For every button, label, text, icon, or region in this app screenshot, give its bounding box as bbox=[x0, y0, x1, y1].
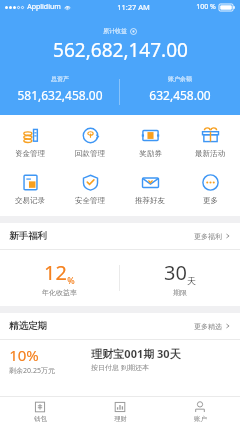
staticText: 581,632,458.00 bbox=[17, 87, 103, 103]
staticText: 交易记录 bbox=[15, 196, 45, 205]
staticText: 12 bbox=[44, 259, 67, 286]
staticText: 更多精选 bbox=[194, 322, 222, 331]
staticText: 精选定期 bbox=[9, 320, 47, 332]
staticText: 理财宝001期 30天 bbox=[91, 346, 181, 361]
staticText: 奖励券 bbox=[139, 149, 162, 158]
staticText: 最新活动 bbox=[195, 149, 225, 158]
staticText: 30 bbox=[164, 259, 187, 286]
staticText: 安全管理 bbox=[75, 196, 105, 205]
button[interactable]: 账户 bbox=[160, 397, 240, 427]
staticText: 账户余额 bbox=[168, 75, 192, 83]
staticText: 理财 bbox=[114, 415, 127, 423]
staticText: 剩余20.25万元 bbox=[9, 366, 55, 376]
staticText: 累计收益 bbox=[103, 27, 127, 35]
staticText: 钱包 bbox=[34, 415, 47, 423]
button[interactable]: 资金管理 bbox=[0, 124, 60, 160]
staticText: 回款管理 bbox=[75, 149, 105, 158]
button[interactable]: 安全管理 bbox=[60, 171, 120, 207]
staticText: 天 bbox=[187, 275, 196, 286]
staticText: 更多福利 bbox=[194, 232, 222, 241]
staticText: 11:27 AM bbox=[117, 2, 150, 12]
staticText: Applidium bbox=[27, 2, 61, 12]
staticText: 632,458.00 bbox=[149, 87, 211, 103]
staticText: % bbox=[67, 274, 75, 286]
staticText: 账户 bbox=[194, 415, 207, 423]
staticText: 资金管理 bbox=[15, 149, 45, 158]
button[interactable]: 10% bbox=[0, 340, 240, 384]
button[interactable]: 回款管理 bbox=[60, 124, 120, 160]
button[interactable]: 新手福利 bbox=[0, 223, 240, 249]
staticText: 年化收益率 bbox=[42, 288, 77, 297]
staticText: 10% bbox=[9, 345, 39, 365]
button[interactable]: 推荐好友 bbox=[120, 171, 180, 207]
button[interactable]: 精选定期 bbox=[0, 313, 240, 339]
button[interactable]: 钱包 bbox=[0, 397, 80, 427]
button[interactable]: 最新活动 bbox=[180, 124, 240, 160]
button[interactable]: 更多 bbox=[180, 171, 240, 207]
staticText: 100 % bbox=[196, 2, 216, 12]
staticText: 新手福利 bbox=[9, 230, 47, 242]
button[interactable]: 理财 bbox=[80, 397, 160, 427]
staticText: 按日付息 到期还本 bbox=[91, 363, 149, 373]
button[interactable]: 交易记录 bbox=[0, 171, 60, 207]
staticText: 更多 bbox=[203, 196, 218, 205]
staticText: 期限 bbox=[173, 288, 187, 297]
staticText: 总资产 bbox=[51, 75, 69, 83]
staticText: 推荐好友 bbox=[135, 196, 165, 205]
staticText: 562,682,147.00 bbox=[53, 37, 188, 63]
button[interactable]: 奖励券 bbox=[120, 124, 180, 160]
button[interactable]: 12 bbox=[0, 250, 240, 306]
